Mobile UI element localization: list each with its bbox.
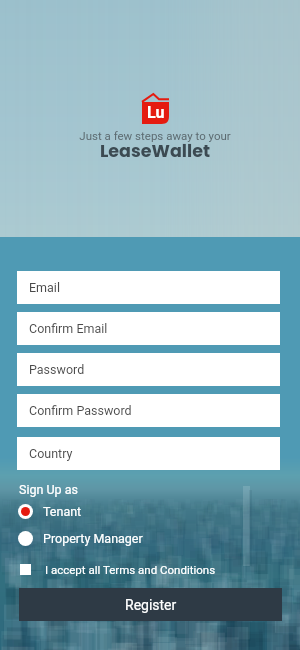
staticText: Password [29,362,85,377]
button[interactable]: Confirm Password [17,394,280,427]
staticText: Confirm Email [29,321,108,336]
button[interactable]: Password [17,353,280,386]
staticText: LeaseWallet [10,139,300,164]
button[interactable]: Property Manager [18,531,143,546]
button[interactable]: Country [17,437,280,470]
staticText: Country [29,446,73,461]
staticText: Just a few steps away to your [10,129,300,142]
staticText: Tenant [43,504,82,519]
button[interactable]: Tenant [18,504,82,519]
button[interactable]: Register [19,588,282,621]
staticText: Sign Up as [19,482,78,497]
button[interactable]: Confirm Email [17,312,280,345]
button[interactable]: Email [17,271,280,304]
staticText: Register [125,597,177,613]
button[interactable]: I accept all Terms and Conditions [20,563,216,576]
staticText: Confirm Password [29,403,132,418]
staticText: Property Manager [43,531,143,546]
staticText: Email [29,280,60,295]
staticText: I accept all Terms and Conditions [45,563,216,576]
staticText: Lu [147,103,165,122]
